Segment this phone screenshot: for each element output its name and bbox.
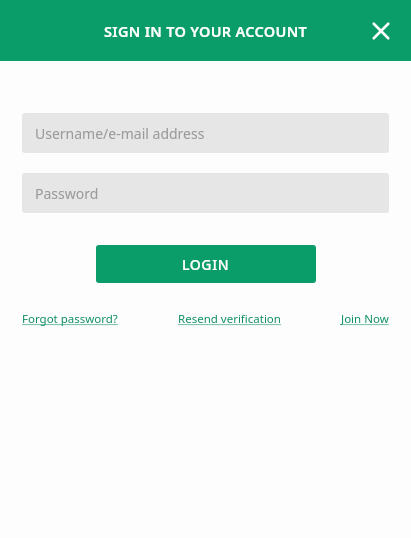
staticText: Join Now — [341, 311, 389, 327]
button[interactable]: Close — [359, 9, 403, 53]
staticText: Resend verification — [178, 311, 281, 327]
staticText: Username/e-mail address — [35, 124, 205, 143]
staticText: Password — [35, 184, 99, 203]
button[interactable]: Resend verification — [178, 307, 281, 331]
button[interactable]: LOGIN — [96, 245, 316, 283]
staticText: LOGIN — [182, 255, 230, 274]
staticText: SIGN IN TO YOUR ACCOUNT — [0, 21, 411, 41]
button[interactable]: Password — [22, 173, 389, 213]
button[interactable]: Forgot password? — [22, 307, 118, 331]
staticText: Forgot password? — [22, 311, 118, 327]
button[interactable]: Join Now — [341, 307, 389, 331]
button[interactable]: Username/e-mail address — [22, 113, 389, 153]
